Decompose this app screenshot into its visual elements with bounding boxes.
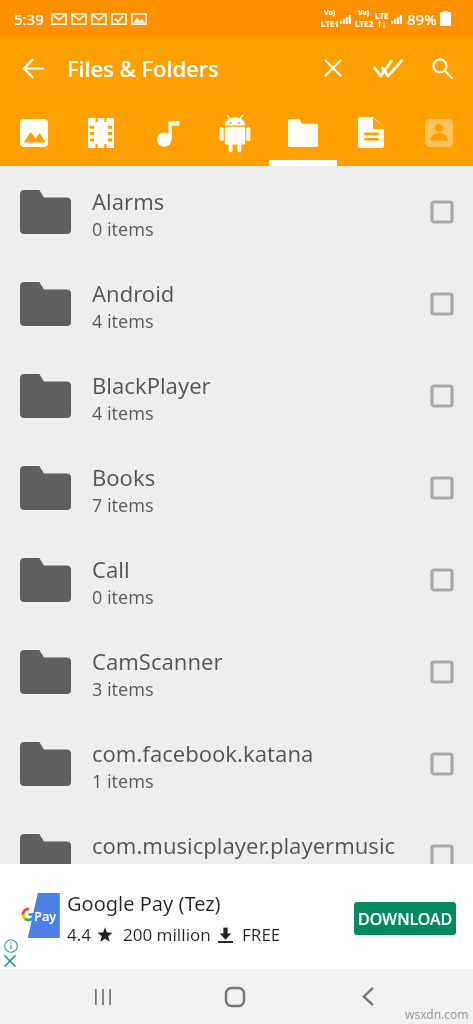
button[interactable]: com.musicplayer.playermusic	[0, 810, 473, 864]
button[interactable]: Select com.musicplayer.playermusic	[419, 833, 465, 864]
button[interactable]: com.facebook.katana	[0, 718, 473, 810]
button[interactable]: Images	[0, 99, 67, 166]
button[interactable]: Select BlackPlayer	[419, 373, 465, 419]
staticText: 7 items	[92, 493, 154, 518]
button[interactable]: BlackPlayer	[0, 350, 473, 442]
button[interactable]: Search	[420, 46, 464, 90]
button[interactable]: Recents	[75, 969, 131, 1024]
staticText: com.facebook.katana	[92, 738, 314, 768]
staticText: 5:39	[14, 9, 44, 29]
button[interactable]: Books	[0, 442, 473, 534]
button[interactable]: Back	[11, 46, 55, 90]
staticText: com.musicplayer.playermusic	[92, 830, 396, 860]
button[interactable]: Alarms	[0, 166, 473, 258]
staticText: Vo)	[358, 8, 370, 18]
staticText: LTE1	[321, 18, 339, 29]
button[interactable]: Call	[0, 534, 473, 626]
staticText: CamScanner	[92, 646, 223, 676]
staticText: 0 items	[92, 217, 154, 242]
staticText: Call	[92, 554, 130, 584]
staticText: LTE2	[355, 18, 373, 29]
button[interactable]: Documents	[337, 99, 405, 166]
staticText: Google Pay (Tez)	[67, 890, 221, 917]
button[interactable]: Select Books	[419, 465, 465, 511]
button[interactable]: Select Android	[419, 281, 465, 327]
button[interactable]: Select all	[366, 46, 410, 90]
staticText: 4 items	[92, 309, 154, 334]
staticText: wsxdn.com	[405, 1006, 469, 1022]
button[interactable]: Back	[340, 969, 396, 1024]
staticText: 1 items	[92, 769, 154, 794]
staticText: FREE	[242, 923, 281, 946]
staticText: 4.4	[67, 923, 92, 946]
button[interactable]: CamScanner	[0, 626, 473, 718]
button[interactable]: Contacts	[405, 99, 473, 166]
button[interactable]: Android	[0, 258, 473, 350]
button[interactable]: Select Alarms	[419, 189, 465, 235]
button[interactable]: Close ad	[3, 954, 17, 968]
button[interactable]: Select com.facebook.katana	[419, 741, 465, 787]
button[interactable]: Videos	[67, 99, 134, 166]
staticText: 89%	[407, 9, 437, 29]
button[interactable]: DOWNLOAD	[354, 902, 456, 935]
button[interactable]: Select CamScanner	[419, 649, 465, 695]
staticText: LTE	[375, 10, 389, 21]
staticText: 200 million	[123, 923, 211, 946]
button[interactable]: Folders	[269, 99, 337, 166]
button[interactable]: Ad info	[4, 939, 18, 953]
staticText: Files & Folders	[67, 53, 219, 83]
staticText: Alarms	[92, 186, 165, 216]
button[interactable]: Music	[134, 99, 201, 166]
staticText: Vo)	[324, 8, 336, 18]
button[interactable]: Home	[207, 969, 263, 1024]
staticText: 4 items	[92, 401, 154, 426]
staticText: BlackPlayer	[92, 370, 211, 400]
staticText: Android	[92, 278, 175, 308]
button[interactable]: Clear selection	[311, 46, 355, 90]
staticText: Books	[92, 462, 156, 492]
staticText: Pay	[34, 907, 57, 925]
staticText: 0 items	[92, 585, 154, 610]
staticText: 3 items	[92, 677, 154, 702]
button[interactable]: Apps	[201, 99, 269, 166]
staticText: DOWNLOAD	[358, 908, 453, 930]
button[interactable]: Select Call	[419, 557, 465, 603]
